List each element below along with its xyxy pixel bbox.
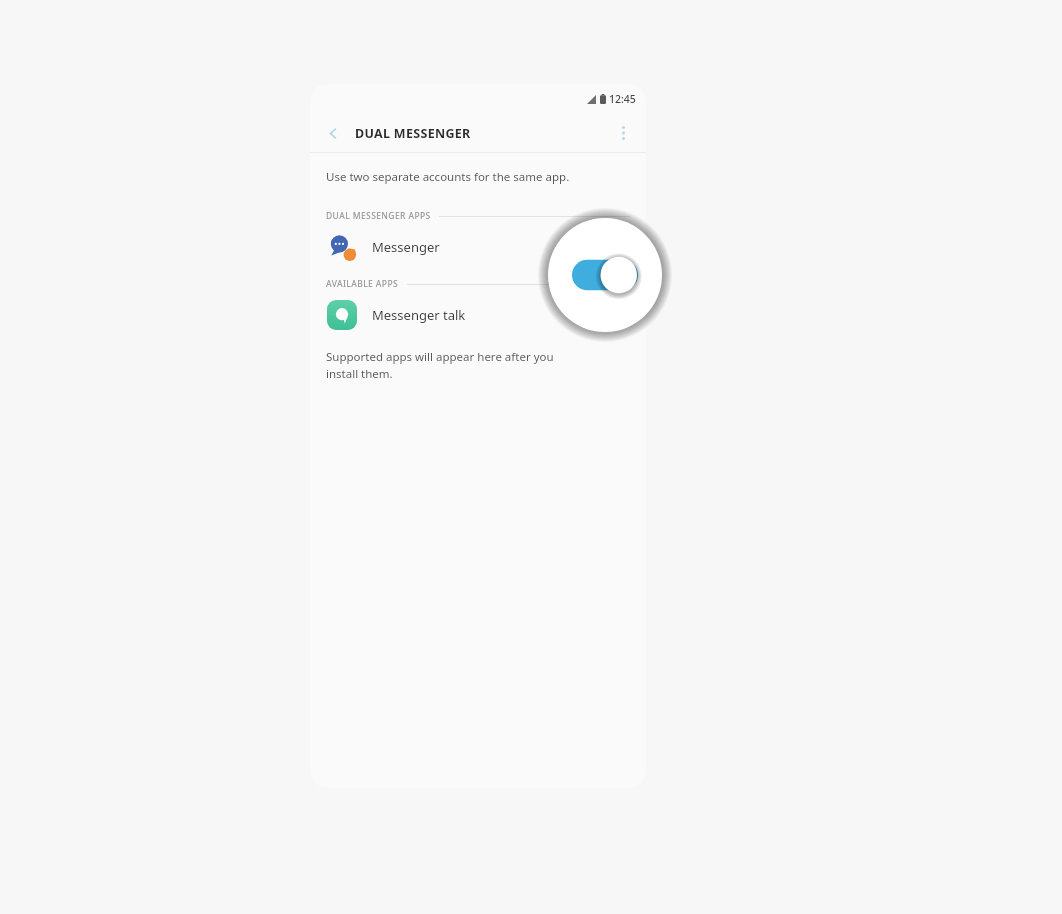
staticText: Messenger talk — [372, 306, 466, 324]
staticText: AVAILABLE APPS — [326, 278, 399, 290]
staticText: Use two separate accounts for the same a… — [326, 169, 570, 185]
staticText: DUAL MESSENGER APPS — [326, 210, 431, 222]
staticText: Supported apps will appear here after yo… — [326, 349, 554, 382]
staticText: DUAL MESSENGER — [355, 125, 471, 142]
button[interactable]: Back — [318, 118, 348, 148]
button[interactable]: Messenger talk — [310, 295, 646, 335]
button[interactable]: On — [598, 237, 632, 257]
button[interactable]: Dual Messenger on — [572, 256, 638, 294]
button[interactable]: More options — [608, 118, 638, 148]
button[interactable]: Messenger — [310, 227, 646, 267]
staticText: Messenger — [372, 238, 440, 256]
staticText: 12:45 — [609, 92, 636, 106]
